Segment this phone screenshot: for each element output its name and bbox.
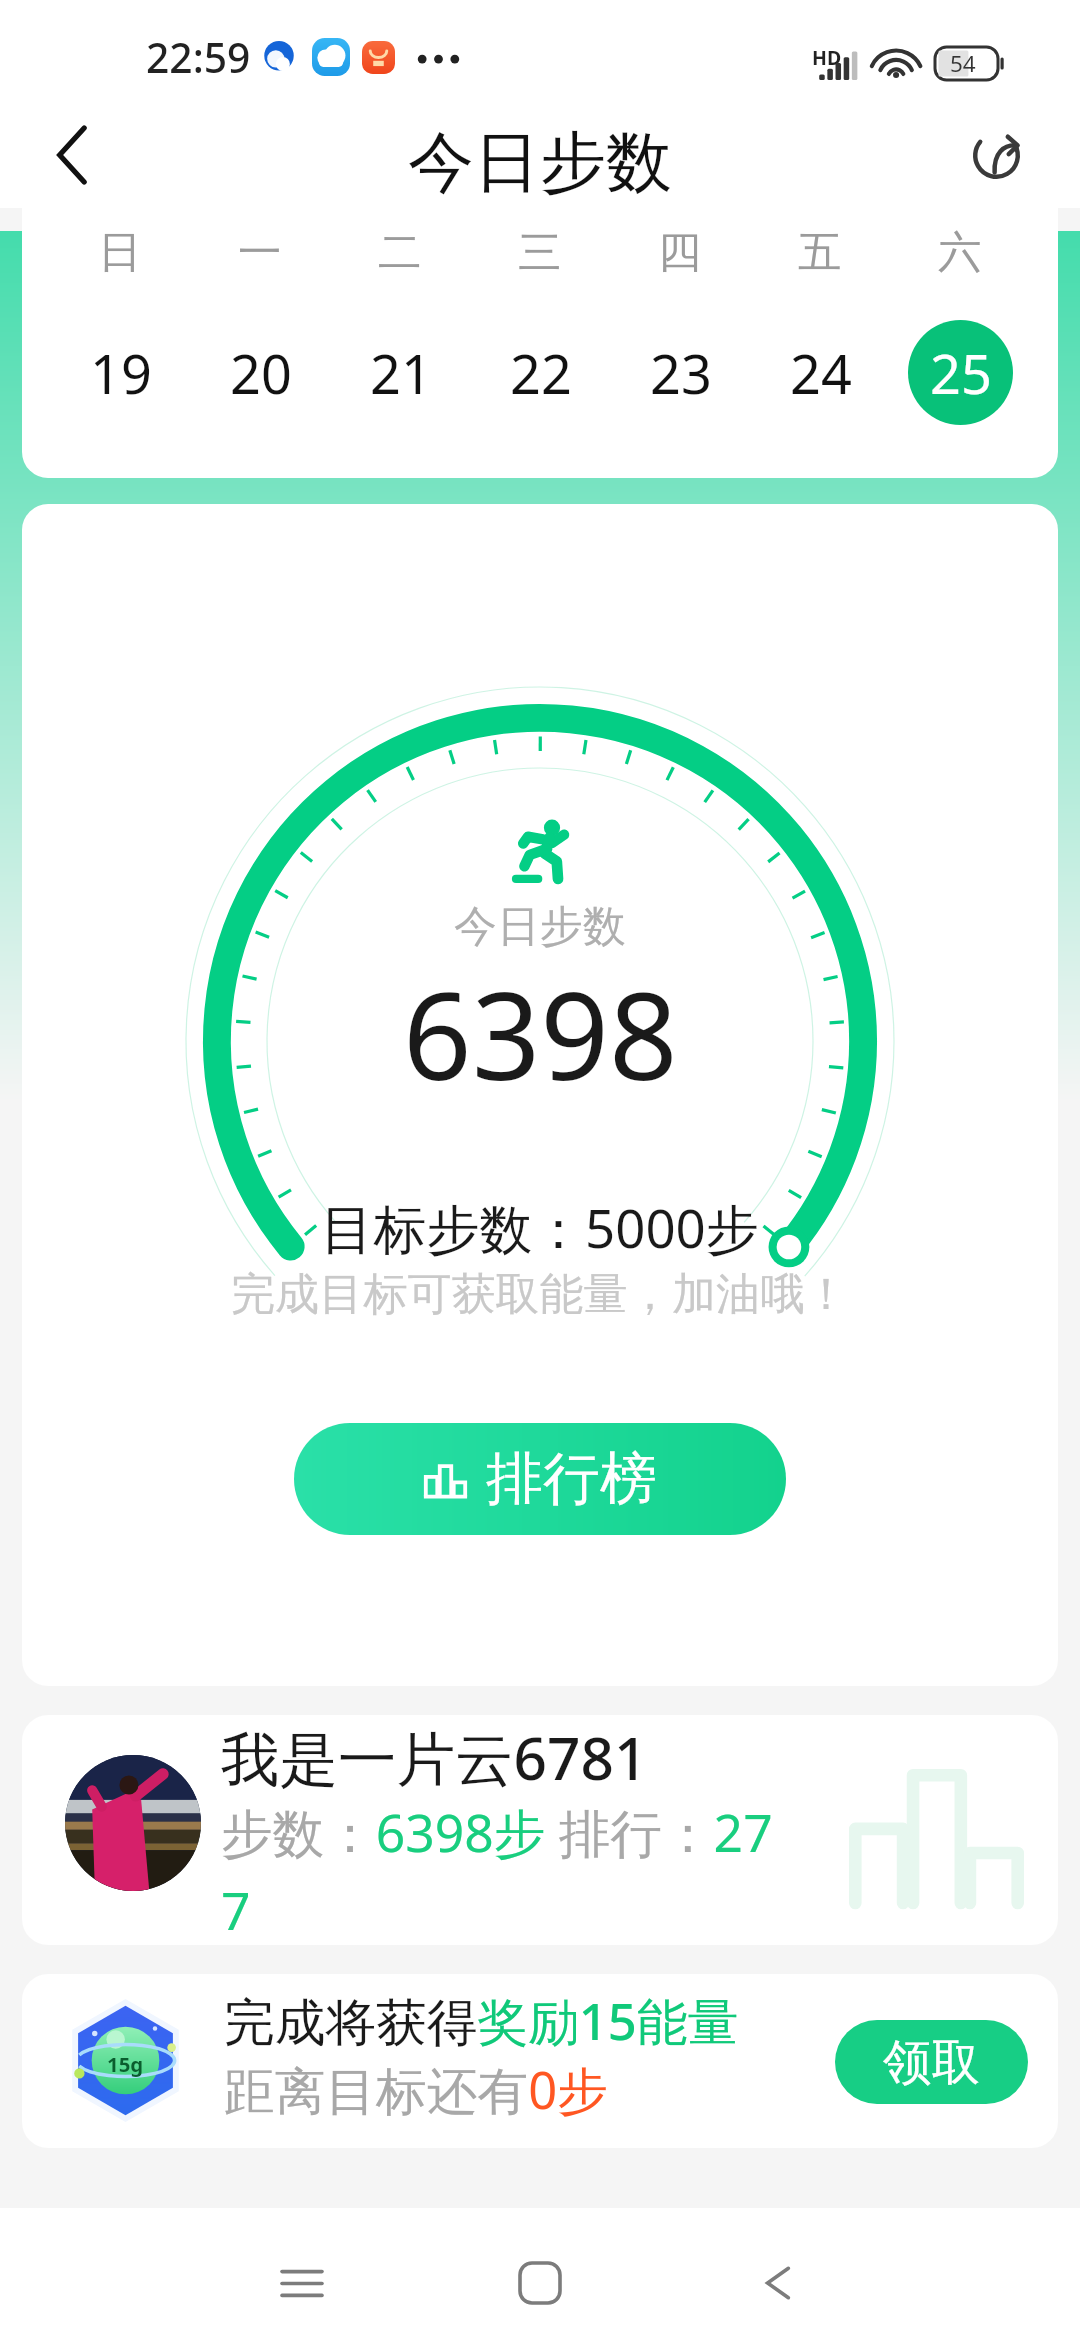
staticText: 25 <box>930 336 992 410</box>
button[interactable]: Recent apps <box>236 2217 368 2340</box>
staticText: 二 <box>378 225 422 280</box>
button[interactable]: 21 <box>348 320 453 425</box>
staticText: 目标步数：5000步 <box>321 1192 759 1264</box>
staticText: 20 <box>230 336 292 410</box>
staticText: 22 <box>510 336 572 410</box>
staticText: 六 <box>938 225 982 280</box>
staticText: 一 <box>238 225 282 280</box>
staticText: 日 <box>98 225 142 280</box>
button[interactable]: 25 <box>908 320 1013 425</box>
button[interactable]: 23 <box>628 320 733 425</box>
staticText: 今日步数 <box>408 121 672 204</box>
staticText: 四 <box>658 225 702 280</box>
button[interactable]: 24 <box>768 320 873 425</box>
staticText: 6398 <box>403 952 678 1099</box>
button[interactable]: 我是一片云6781 <box>22 1715 1058 1945</box>
staticText: 领取 <box>883 2032 981 2093</box>
staticText: 今日步数 <box>454 900 626 954</box>
staticText: 五 <box>798 225 842 280</box>
staticText: 24 <box>790 336 852 410</box>
button[interactable]: Home <box>474 2217 606 2340</box>
button[interactable]: Back <box>15 102 129 208</box>
staticText: HD <box>812 44 842 71</box>
button[interactable]: 19 <box>68 320 173 425</box>
staticText: 完成将获得奖励15能量 <box>224 1986 739 2055</box>
button[interactable]: Back <box>712 2217 844 2340</box>
staticText: 19 <box>90 336 152 410</box>
staticText: 完成目标可获取能量，加油哦！ <box>231 1267 849 1323</box>
staticText: 54 <box>950 48 976 79</box>
staticText: 三 <box>518 225 562 280</box>
button[interactable]: 20 <box>208 320 313 425</box>
button[interactable]: 22 <box>488 320 593 425</box>
staticText: 21 <box>370 336 432 410</box>
button[interactable]: Share <box>936 102 1056 208</box>
staticText: 步数：6398步 排行：27 7 <box>221 1797 773 1945</box>
staticText: 23 <box>650 336 712 410</box>
staticText: 排行榜 <box>486 1443 657 1515</box>
staticText: 距离目标还有0步 <box>224 2055 608 2124</box>
button[interactable]: 排行榜 <box>294 1423 786 1535</box>
button[interactable]: 领取 <box>835 2020 1028 2104</box>
staticText: 15g <box>107 2050 144 2078</box>
staticText: 我是一片云6781 <box>221 1717 648 1797</box>
staticText: 22:59 <box>146 29 251 85</box>
